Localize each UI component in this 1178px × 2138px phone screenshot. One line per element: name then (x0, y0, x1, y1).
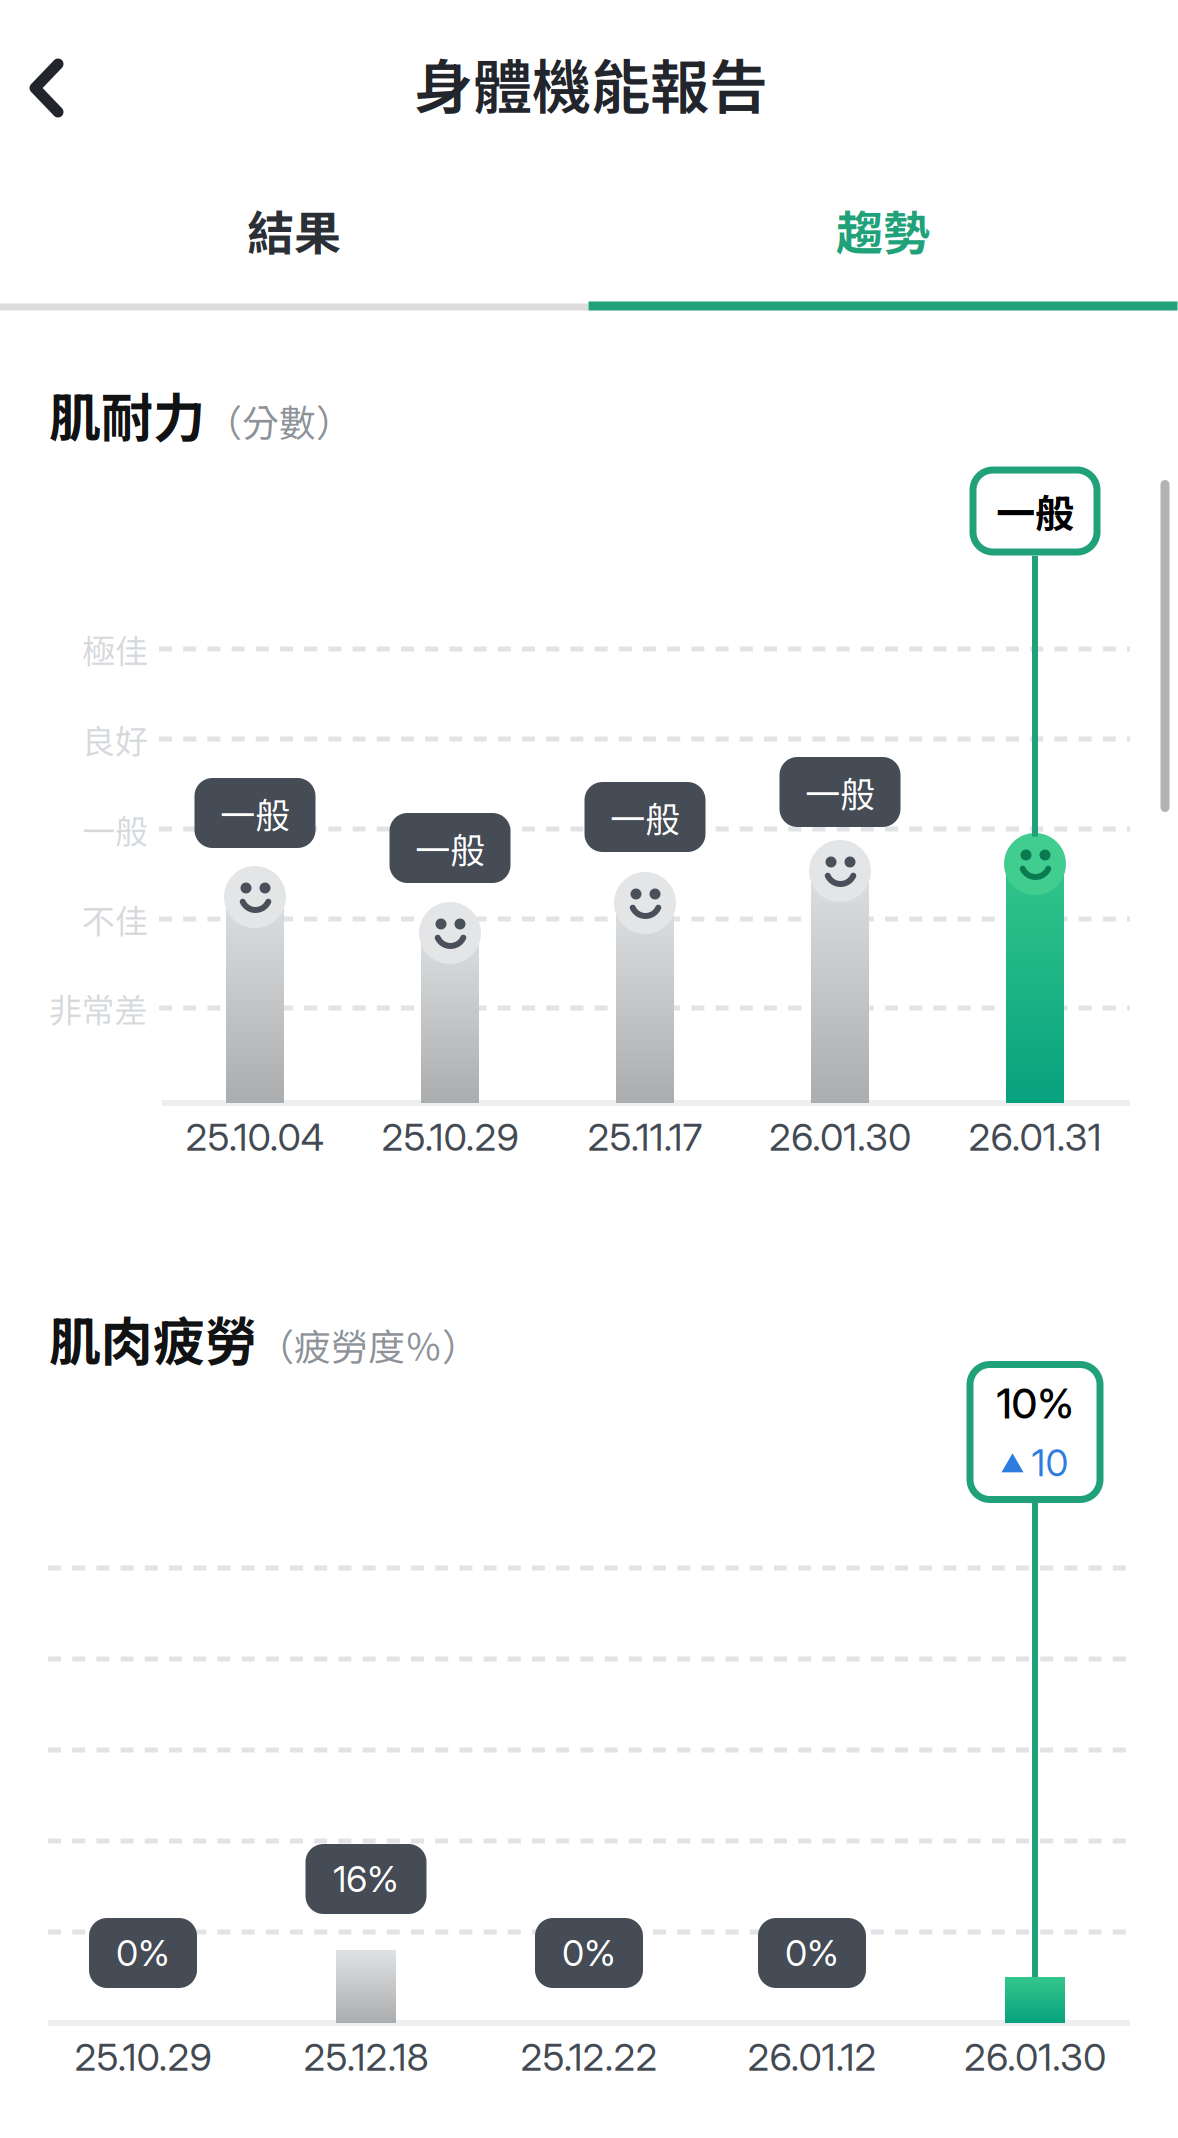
staticText: 26.01.30 (769, 1114, 911, 1160)
staticText: 25.12.18 (303, 2034, 428, 2080)
button[interactable]: 結果 (0, 171, 588, 289)
staticText: 肌肉疲勞 (49, 1300, 257, 1376)
staticText: 一般 (415, 823, 485, 873)
staticText: 不佳 (82, 895, 148, 943)
staticText: 0% (116, 1931, 170, 1975)
staticText: 一般 (220, 788, 290, 838)
staticText: 25.10.29 (74, 2034, 211, 2080)
button[interactable]: Back (0, 26, 114, 150)
staticText: （疲勞度％） (257, 1318, 479, 1371)
staticText: 26.01.30 (964, 2034, 1106, 2080)
button[interactable]: 10% (966, 1361, 1103, 1503)
staticText: 極佳 (82, 625, 148, 673)
staticText: 一般 (610, 792, 680, 842)
staticText: 25.12.22 (520, 2034, 657, 2080)
staticText: 10% (996, 1379, 1073, 1428)
staticText: 25.11.17 (587, 1114, 702, 1160)
staticText: 10 (1031, 1440, 1068, 1485)
staticText: 0% (562, 1931, 616, 1975)
staticText: 25.10.04 (185, 1114, 324, 1160)
staticText: 一般 (996, 483, 1074, 539)
staticText: （分數） (205, 394, 353, 447)
staticText: 良好 (82, 715, 148, 763)
staticText: 一般 (82, 805, 148, 853)
staticText: 結果 (247, 196, 341, 264)
staticText: 25.10.29 (381, 1114, 518, 1160)
button[interactable]: 一般 (969, 466, 1100, 555)
staticText: 非常差 (48, 984, 147, 1032)
button[interactable]: 趨勢 (588, 171, 1177, 289)
staticText: 26.01.31 (968, 1114, 1101, 1160)
staticText: 26.01.12 (747, 2034, 876, 2080)
staticText: 一般 (805, 767, 875, 817)
staticText: 趨勢 (836, 196, 930, 264)
staticText: 肌耐力 (49, 376, 205, 452)
staticText: 0% (785, 1931, 839, 1975)
staticText: 16% (333, 1857, 399, 1901)
staticText: 身體機能報告 (414, 40, 768, 126)
